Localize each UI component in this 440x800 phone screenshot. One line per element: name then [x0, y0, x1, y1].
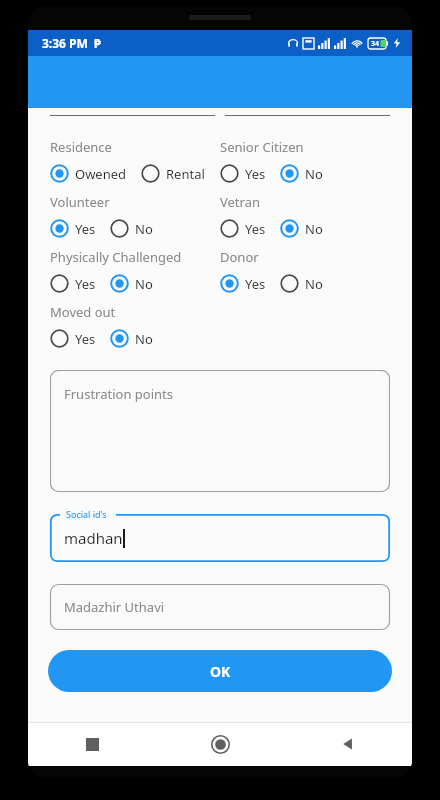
button[interactable]: No	[110, 327, 153, 350]
staticText: ₱	[94, 35, 101, 51]
staticText: 3:36 PM	[42, 35, 88, 51]
staticText: Donor	[220, 248, 259, 266]
staticText: No	[305, 220, 323, 238]
button[interactable]: Yes	[220, 217, 266, 240]
staticText: Yes	[245, 165, 266, 183]
staticText: Moved out	[50, 303, 116, 321]
button[interactable]: Recent apps	[28, 722, 156, 766]
staticText: No	[305, 165, 323, 183]
staticText: No	[135, 220, 153, 238]
staticText: Social id's	[66, 508, 107, 520]
button[interactable]: No	[110, 272, 153, 295]
button[interactable]: Madazhir Uthavi	[50, 584, 390, 630]
staticText: Senior Citizen	[220, 138, 304, 156]
staticText: No	[305, 275, 323, 293]
staticText: 34	[371, 39, 380, 49]
button[interactable]: No	[280, 162, 323, 185]
staticText: Rental	[166, 165, 205, 183]
button[interactable]: Frustration points	[50, 370, 390, 492]
staticText: Owened	[75, 165, 127, 183]
button[interactable]: Yes	[50, 217, 96, 240]
staticText: Frustration points	[64, 385, 173, 403]
staticText: madhan	[64, 528, 123, 548]
staticText: Vetran	[220, 193, 261, 211]
button[interactable]: OK	[48, 650, 392, 692]
button[interactable]: Social id's	[50, 514, 390, 562]
button[interactable]: Yes	[220, 162, 266, 185]
button[interactable]: No	[280, 217, 323, 240]
staticText: Volunteer	[50, 193, 110, 211]
button[interactable]: Back	[284, 722, 412, 766]
staticText: Yes	[245, 275, 266, 293]
button[interactable]: Home	[156, 722, 284, 766]
button[interactable]: Yes	[50, 272, 96, 295]
staticText: Madazhir Uthavi	[64, 598, 165, 616]
staticText: OK	[210, 662, 231, 681]
button[interactable]: No	[110, 217, 153, 240]
staticText: Yes	[75, 275, 96, 293]
button[interactable]: Yes	[50, 327, 96, 350]
button[interactable]: Yes	[220, 272, 266, 295]
staticText: Residence	[50, 138, 112, 156]
staticText: No	[135, 275, 153, 293]
button[interactable]: No	[280, 272, 323, 295]
button[interactable]: Owened	[50, 162, 127, 185]
button[interactable]: Rental	[141, 162, 205, 185]
staticText: Physically Challenged	[50, 248, 182, 266]
staticText: Yes	[245, 220, 266, 238]
staticText: No	[135, 330, 153, 348]
staticText: Yes	[75, 330, 96, 348]
staticText: Yes	[75, 220, 96, 238]
